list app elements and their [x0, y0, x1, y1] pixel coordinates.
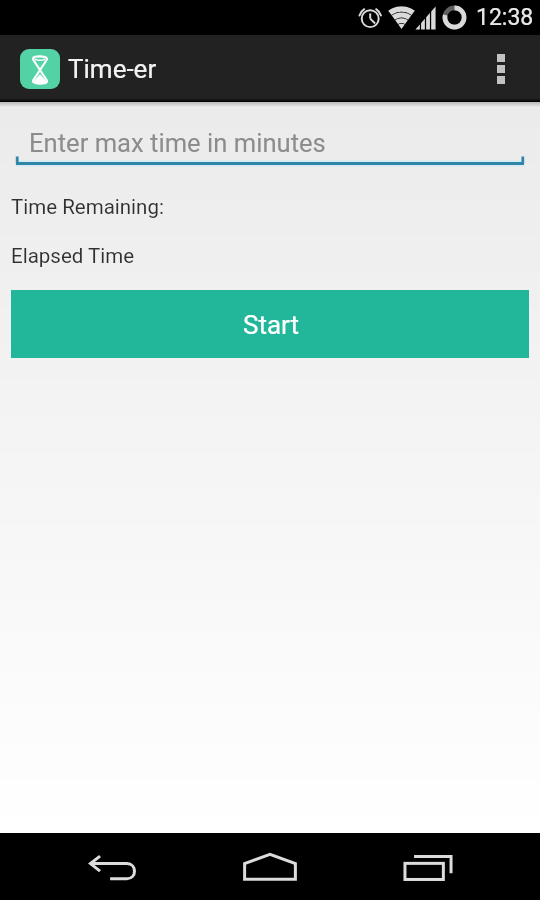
button[interactable]: App icon [20, 49, 60, 89]
button[interactable]: Enter max time in minutes [16, 115, 524, 165]
staticText: Time-er [68, 54, 157, 84]
button[interactable]: Home [220, 833, 320, 900]
button[interactable]: Back [63, 833, 163, 900]
staticText: Elapsed Time [11, 244, 135, 268]
button[interactable]: Start [11, 290, 529, 358]
staticText: Time Remaining: [11, 195, 164, 219]
staticText: 12:38 [476, 4, 534, 31]
staticText: Enter max time in minutes [29, 128, 326, 158]
button[interactable]: Recent apps [378, 833, 478, 900]
button[interactable]: More options [470, 35, 532, 102]
staticText: Start [243, 310, 300, 340]
